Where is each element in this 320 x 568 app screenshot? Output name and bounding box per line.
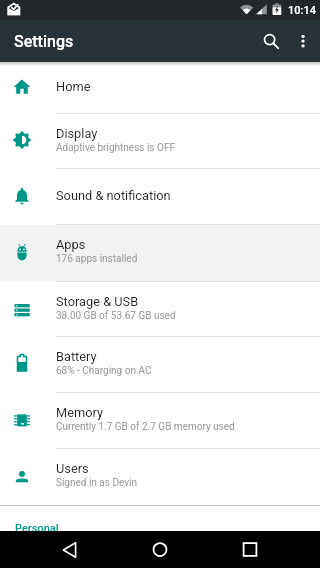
staticText: Adaptive brightness is OFF [56,142,175,154]
button[interactable]: Home [0,62,320,113]
button[interactable]: Home [142,531,178,568]
staticText: Apps [56,237,86,252]
staticText: Signed in as Devin [56,477,138,489]
button[interactable]: Battery [0,337,320,392]
staticText: Battery [56,349,97,364]
staticText: 38.00 GB of 53.67 GB used [56,310,176,322]
button[interactable]: Sound & notification [0,169,320,224]
staticText: Home [56,79,91,94]
staticText: Memory [56,405,103,420]
staticText: Personal [15,522,59,531]
button[interactable]: Users [0,449,320,505]
staticText: Sound & notification [56,188,171,203]
staticText: Currently 1.7 GB of 2.7 GB memory used [56,421,235,433]
staticText: Storage & USB [56,294,139,309]
button[interactable]: Back [52,531,88,568]
staticText: 176 apps installed [56,253,138,265]
staticText: Settings [14,32,74,51]
button[interactable]: Apps [0,225,320,281]
button[interactable]: Display [0,114,320,168]
staticText: 68% - Charging on AC [56,365,152,377]
button[interactable]: Search [254,24,288,58]
staticText: 10:14 [288,4,316,17]
button[interactable]: Memory [0,393,320,448]
staticText: Display [56,126,98,141]
button[interactable]: More options [280,24,310,54]
staticText: Users [56,461,89,476]
button[interactable]: Storage & USB [0,282,320,336]
button[interactable]: Recents [232,531,268,568]
